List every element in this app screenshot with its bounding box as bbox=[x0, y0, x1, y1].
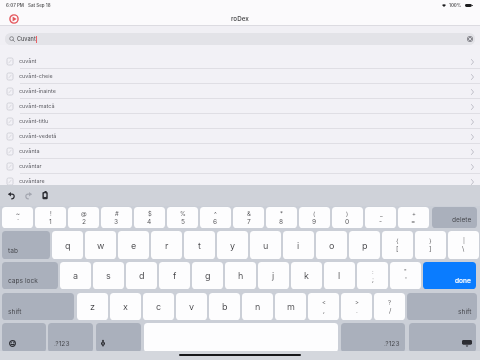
staticText: d bbox=[139, 270, 145, 281]
button[interactable]: { bbox=[382, 231, 413, 259]
button[interactable]: o bbox=[316, 231, 347, 259]
button[interactable]: cuvânt bbox=[0, 54, 480, 69]
staticText: [ bbox=[396, 245, 399, 253]
button[interactable]: g bbox=[192, 262, 223, 289]
button[interactable]: e bbox=[118, 231, 149, 259]
button[interactable]: .?123 bbox=[48, 323, 93, 352]
button[interactable]: ) bbox=[332, 207, 363, 228]
button[interactable]: Redo bbox=[23, 190, 34, 201]
staticText: cuvânt-matcă bbox=[19, 103, 55, 110]
staticText: roDex bbox=[231, 15, 249, 23]
staticText: @ bbox=[81, 210, 87, 217]
button[interactable]: Paste bbox=[40, 190, 51, 201]
staticText: c bbox=[156, 301, 162, 312]
button[interactable]: cuvântător bbox=[0, 189, 480, 204]
button[interactable]: ? bbox=[374, 293, 405, 320]
button[interactable]: k bbox=[291, 262, 322, 289]
button[interactable]: @ bbox=[68, 207, 99, 228]
button[interactable]: Dictate bbox=[96, 323, 141, 352]
button[interactable]: cuvânt-vedetă bbox=[0, 129, 480, 144]
staticText: cuvânt-vedetă bbox=[19, 133, 57, 140]
staticText: ~ bbox=[16, 210, 20, 217]
button[interactable]: $ bbox=[134, 207, 165, 228]
button[interactable] bbox=[144, 323, 338, 352]
button[interactable]: " bbox=[390, 262, 421, 289]
button[interactable]: ! bbox=[35, 207, 66, 228]
button[interactable]: s bbox=[93, 262, 124, 289]
button[interactable]: y bbox=[217, 231, 248, 259]
button[interactable]: | bbox=[448, 231, 479, 259]
button[interactable]: Pronunciation bbox=[8, 13, 19, 24]
button[interactable]: v bbox=[176, 293, 207, 320]
button[interactable]: : bbox=[357, 262, 388, 289]
button[interactable]: h bbox=[225, 262, 256, 289]
button[interactable]: j bbox=[258, 262, 289, 289]
button[interactable]: ^ bbox=[200, 207, 231, 228]
button[interactable]: delete bbox=[432, 207, 477, 228]
button[interactable]: p bbox=[349, 231, 380, 259]
button[interactable]: * bbox=[266, 207, 297, 228]
button[interactable]: m bbox=[275, 293, 306, 320]
button[interactable]: Hide keyboard bbox=[409, 323, 476, 352]
staticText: 4 bbox=[147, 218, 152, 226]
button[interactable]: # bbox=[101, 207, 132, 228]
button[interactable]: r bbox=[151, 231, 182, 259]
button[interactable]: l bbox=[324, 262, 355, 289]
button[interactable]: cuvântar bbox=[0, 159, 480, 174]
button[interactable]: c bbox=[143, 293, 174, 320]
button[interactable]: done bbox=[423, 262, 476, 289]
button[interactable]: cuvânt-matcă bbox=[0, 99, 480, 114]
staticText: 1 bbox=[49, 218, 52, 226]
staticText: ] bbox=[429, 245, 432, 253]
button[interactable]: .?123 bbox=[341, 323, 405, 352]
staticText: * bbox=[280, 210, 283, 217]
button[interactable]: } bbox=[415, 231, 446, 259]
staticText: > bbox=[355, 299, 359, 306]
staticText: .?123 bbox=[54, 340, 70, 348]
staticText: , bbox=[323, 307, 325, 315]
button[interactable]: < bbox=[308, 293, 339, 320]
button[interactable]: % bbox=[167, 207, 198, 228]
staticText: % bbox=[180, 210, 186, 217]
button[interactable]: cuvânta bbox=[0, 144, 480, 159]
button[interactable]: Clear text bbox=[466, 35, 474, 43]
button[interactable]: f bbox=[159, 262, 190, 289]
button[interactable]: u bbox=[250, 231, 281, 259]
staticText: h bbox=[238, 270, 244, 281]
staticText: o bbox=[329, 240, 335, 251]
button[interactable]: t bbox=[184, 231, 215, 259]
button[interactable]: Cuvant bbox=[5, 33, 475, 45]
button[interactable]: cuvânt-titlu bbox=[0, 114, 480, 129]
button[interactable]: & bbox=[233, 207, 264, 228]
button[interactable]: + bbox=[398, 207, 429, 228]
button[interactable]: caps lock bbox=[2, 262, 58, 289]
button[interactable]: cuvânt-cheie bbox=[0, 69, 480, 84]
button[interactable]: ~ bbox=[2, 207, 33, 228]
button[interactable]: b bbox=[209, 293, 240, 320]
button[interactable]: d bbox=[126, 262, 157, 289]
staticText: b bbox=[222, 301, 228, 312]
button[interactable]: Emoji bbox=[2, 323, 46, 352]
staticText: m bbox=[287, 301, 295, 312]
button[interactable]: _ bbox=[365, 207, 396, 228]
button[interactable]: z bbox=[77, 293, 108, 320]
button[interactable]: > bbox=[341, 293, 372, 320]
button[interactable]: x bbox=[110, 293, 141, 320]
staticText: 9 bbox=[312, 218, 317, 226]
staticText: u bbox=[263, 240, 269, 251]
button[interactable]: i bbox=[283, 231, 314, 259]
staticText: cuvântător bbox=[19, 193, 47, 200]
staticText: # bbox=[115, 210, 119, 217]
button[interactable]: shift bbox=[2, 293, 74, 320]
staticText: w bbox=[97, 240, 105, 251]
button[interactable]: a bbox=[60, 262, 91, 289]
button[interactable]: cuvântare bbox=[0, 174, 480, 189]
button[interactable]: Undo bbox=[6, 190, 17, 201]
button[interactable]: n bbox=[242, 293, 273, 320]
button[interactable]: ( bbox=[299, 207, 330, 228]
button[interactable]: shift bbox=[407, 293, 477, 320]
button[interactable]: cuvânt-înainte bbox=[0, 84, 480, 99]
button[interactable]: tab bbox=[2, 231, 50, 259]
button[interactable]: q bbox=[52, 231, 83, 259]
button[interactable]: w bbox=[85, 231, 116, 259]
